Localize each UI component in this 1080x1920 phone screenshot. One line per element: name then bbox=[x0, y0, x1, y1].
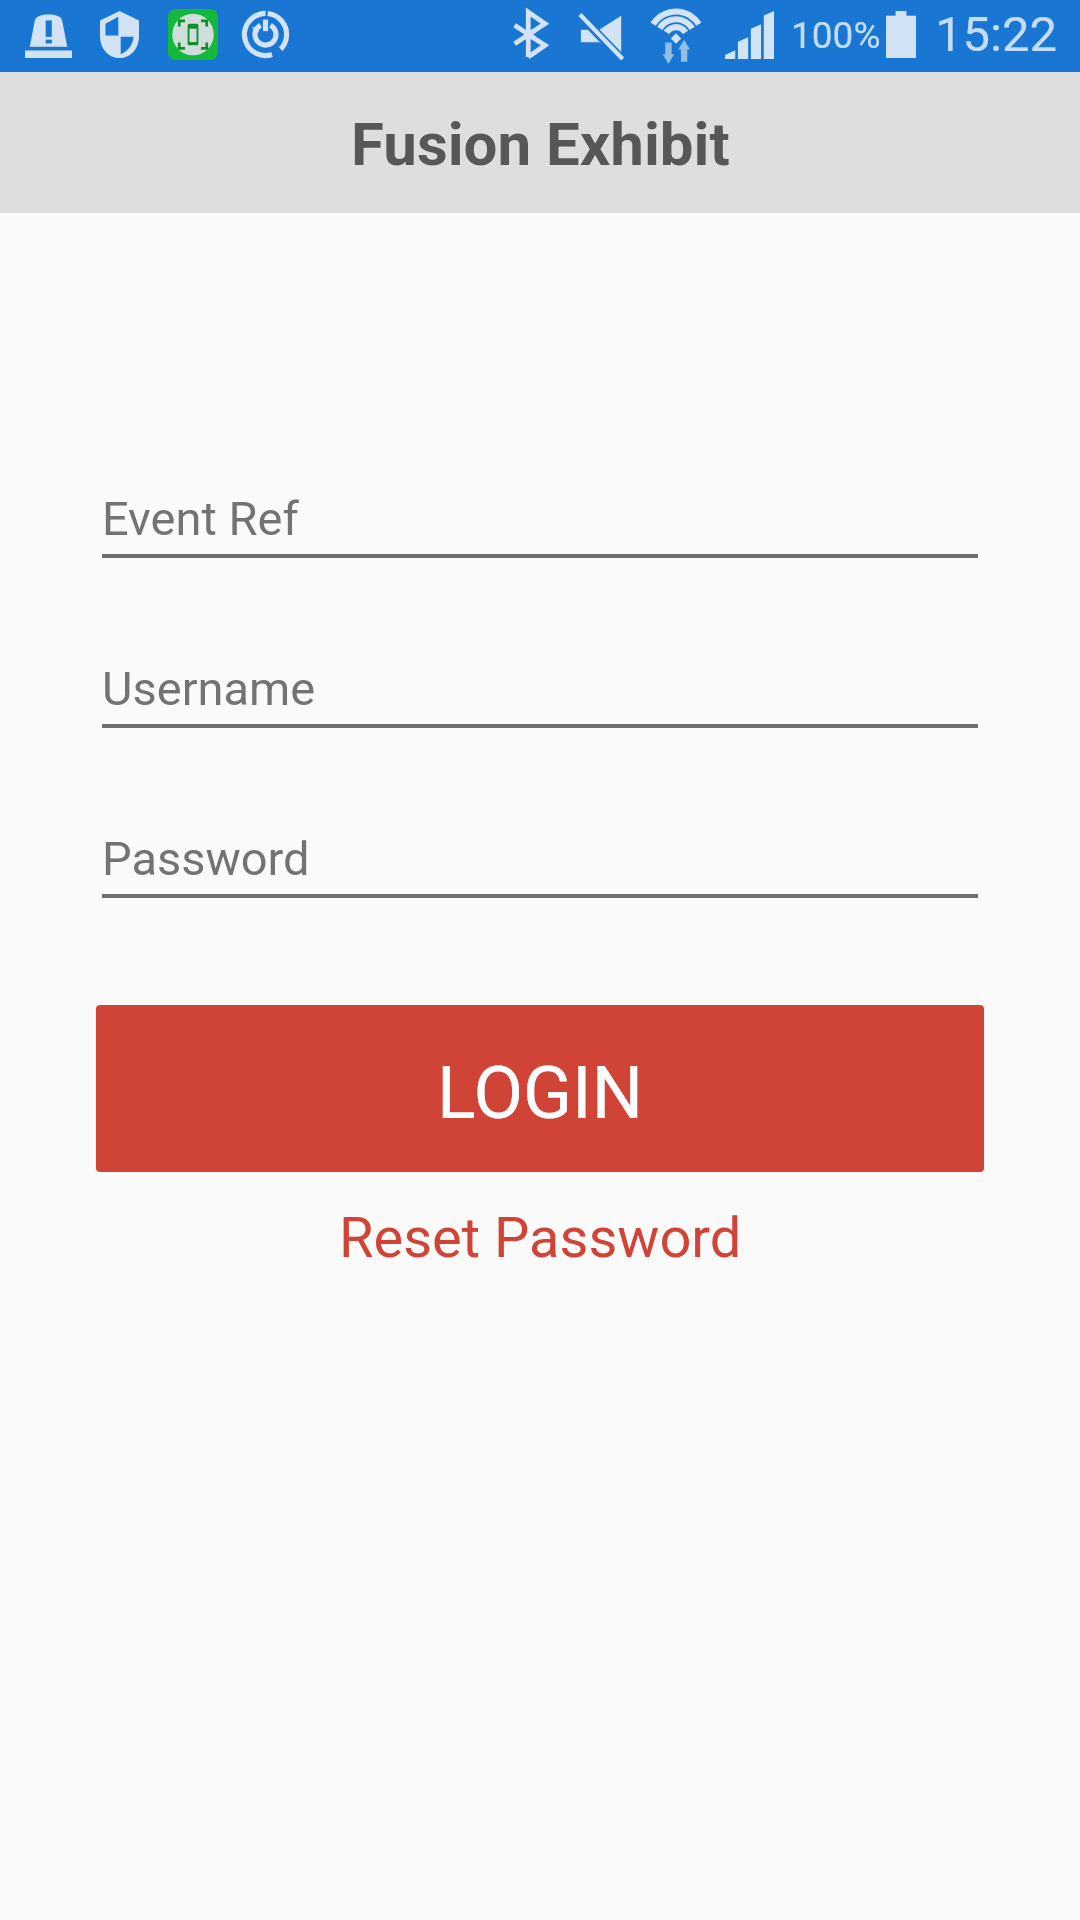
staticText: Event Ref bbox=[102, 491, 299, 546]
button[interactable]: Reset Password bbox=[96, 1186, 984, 1284]
button[interactable]: LOGIN bbox=[96, 1005, 984, 1172]
staticText: 15:22 bbox=[935, 6, 1058, 63]
other: Status icons bbox=[0, 0, 1080, 72]
button[interactable]: Username bbox=[102, 661, 978, 724]
staticText: Reset Password bbox=[339, 1205, 742, 1271]
staticText: 100% bbox=[791, 14, 881, 57]
button[interactable]: Event Ref bbox=[102, 491, 978, 554]
button[interactable]: Password bbox=[102, 831, 978, 894]
staticText: Username bbox=[102, 661, 316, 716]
staticText: Password bbox=[102, 831, 310, 886]
staticText: LOGIN bbox=[437, 1051, 644, 1135]
staticText: Fusion Exhibit bbox=[351, 109, 730, 179]
